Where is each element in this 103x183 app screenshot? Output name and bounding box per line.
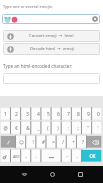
staticText: . — [76, 153, 78, 159]
button[interactable]: 9 — [83, 107, 93, 121]
staticText: Decode html → emoji — [30, 46, 74, 52]
button[interactable]: 3 — [22, 107, 33, 121]
button[interactable]: ☺ — [16, 135, 27, 149]
staticText: Type one or several emojis: — [3, 4, 53, 9]
staticText: 9 — [87, 111, 90, 118]
button[interactable]: . — [72, 149, 82, 163]
button[interactable] — [3, 73, 100, 84]
staticText: - — [66, 153, 68, 159]
staticText: 1 — [4, 111, 7, 118]
button[interactable]: 1 — [0, 107, 11, 121]
button[interactable]: 4 — [33, 107, 43, 121]
staticText: ! — [32, 139, 34, 145]
button[interactable]: , — [21, 149, 31, 163]
staticText: 5 — [47, 111, 50, 118]
button[interactable]: ABC — [11, 149, 21, 163]
staticText: 0 — [97, 111, 100, 118]
button[interactable]: / — [58, 135, 68, 149]
button[interactable]: Convert emoji → html — [3, 30, 100, 42]
staticText: 2 — [15, 111, 18, 118]
staticText: + — [72, 139, 75, 145]
button[interactable]: - — [62, 149, 72, 163]
button[interactable]: Home — [40, 166, 64, 183]
staticText: ( — [47, 125, 49, 131]
staticText: ? — [82, 139, 84, 145]
button[interactable]: @ — [0, 121, 11, 135]
button[interactable] — [88, 135, 103, 149]
staticText: Type an html-encoded character: — [3, 63, 73, 69]
staticText: " — [87, 125, 89, 131]
button[interactable]: & — [22, 121, 33, 135]
staticText: 3 — [26, 111, 29, 118]
button[interactable]: ? — [78, 135, 88, 149]
staticText: ☺ — [19, 140, 24, 145]
button[interactable]: ( — [43, 121, 53, 135]
button[interactable]: " — [83, 121, 93, 135]
button[interactable]: 8 — [73, 107, 83, 121]
button[interactable]: 0 — [93, 107, 103, 121]
button[interactable]: Clear text — [2, 14, 100, 24]
staticText: 4 — [37, 111, 40, 118]
staticText: OK — [89, 153, 96, 159]
staticText: € — [15, 125, 18, 131]
staticText: : — [67, 125, 69, 131]
button[interactable]: Clear text — [92, 16, 98, 22]
button[interactable]: 2 — [11, 107, 22, 121]
staticText: ; — [77, 125, 79, 131]
staticText: ) — [57, 125, 59, 131]
staticText: _ — [37, 125, 40, 131]
staticText: 8 — [77, 111, 80, 118]
button[interactable]: . — [31, 149, 41, 163]
staticText: / — [62, 139, 64, 145]
button[interactable]: # — [38, 135, 48, 149]
button[interactable]: OK — [82, 149, 103, 163]
button[interactable]: ; — [73, 121, 83, 135]
button[interactable]: ! — [27, 135, 38, 149]
button[interactable]: 7 — [63, 107, 73, 121]
button[interactable] — [0, 149, 11, 163]
staticText: 6 — [57, 111, 60, 118]
button[interactable]: Decode html → emoji — [3, 43, 100, 55]
staticText: = — [52, 139, 55, 145]
staticText: # — [42, 139, 45, 145]
button[interactable]: ' — [93, 121, 103, 135]
button[interactable]: ) — [53, 121, 63, 135]
staticText: ' — [97, 125, 99, 131]
staticText: , — [25, 153, 27, 159]
button[interactable] — [41, 149, 62, 163]
button[interactable]: € — [11, 121, 22, 135]
button[interactable]: Back — [12, 166, 36, 183]
button[interactable]: : — [63, 121, 73, 135]
staticText: @ — [3, 125, 8, 131]
staticText: 7 — [67, 111, 70, 118]
button[interactable]: + — [68, 135, 78, 149]
staticText: . — [35, 153, 37, 159]
staticText: & — [26, 125, 30, 131]
staticText: Convert emoji → html — [29, 33, 74, 39]
button[interactable]: _ — [33, 121, 43, 135]
staticText: ABC — [13, 154, 20, 159]
button[interactable] — [0, 135, 16, 149]
button[interactable]: = — [48, 135, 58, 149]
button[interactable]: Recent apps — [68, 166, 92, 183]
button[interactable]: 5 — [43, 107, 53, 121]
button[interactable]: 6 — [53, 107, 63, 121]
